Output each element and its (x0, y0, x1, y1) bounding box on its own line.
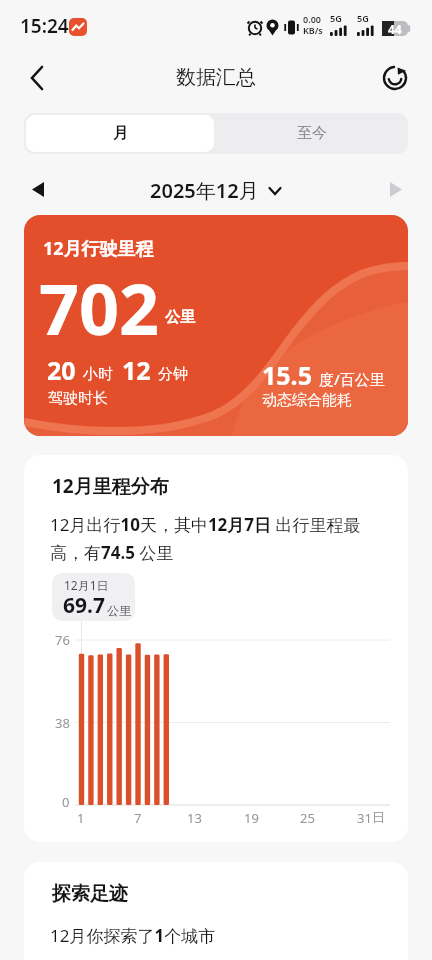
staticText: 5G (330, 12, 342, 24)
button[interactable] (378, 172, 412, 206)
staticText: 1 (77, 809, 85, 827)
staticText: 12月1日 (64, 577, 109, 593)
staticText: 度/百公里 (319, 369, 385, 389)
staticText: 小时 (83, 365, 113, 384)
staticText: 驾驶时长 (48, 389, 108, 408)
staticText: 月 (113, 124, 128, 143)
button[interactable] (374, 56, 416, 98)
staticText: 0.00 (303, 13, 321, 25)
staticText: 5G (357, 12, 369, 24)
staticText: 日 (372, 809, 385, 825)
staticText: 76 (55, 631, 70, 649)
staticText: 20 (47, 353, 76, 387)
staticText: 动态综合能耗 (262, 391, 352, 410)
button[interactable]: 至今 (216, 113, 408, 154)
staticText: 0 (62, 793, 70, 811)
staticText: 69.7 (63, 591, 105, 620)
staticText: 44 (388, 21, 402, 36)
button[interactable]: 2025年12月 (150, 177, 282, 204)
staticText: KB/s (303, 24, 323, 36)
staticText: 分钟 (158, 365, 188, 384)
staticText: 2025年12月 (150, 177, 259, 204)
staticText: 12月里程分布 (52, 473, 169, 499)
staticText: 15.5 (262, 358, 312, 392)
staticText: 数据汇总 (176, 65, 256, 90)
staticText: 702 (39, 260, 160, 355)
button[interactable] (22, 172, 56, 206)
staticText: 19 (244, 809, 259, 827)
staticText: 31 (357, 809, 372, 827)
staticText: 12月行驶里程 (43, 236, 154, 261)
staticText: 12 (122, 353, 151, 387)
button[interactable] (18, 58, 58, 98)
staticText: 12月你探索了1个城市 (50, 924, 216, 947)
staticText: 探索足迹 (52, 882, 128, 906)
staticText: 7 (134, 809, 142, 827)
staticText: 13 (187, 809, 202, 827)
staticText: 12月出行10天，其中12月7日 出行里程最 高，有74.5 公里 (50, 513, 361, 564)
staticText: 公里 (165, 308, 195, 327)
staticText: 25 (300, 809, 315, 827)
staticText: 至今 (297, 124, 327, 143)
staticText: 公里 (107, 603, 131, 618)
staticText: 15:24 (20, 13, 69, 39)
staticText: 38 (55, 714, 70, 732)
button[interactable]: 月 (26, 115, 214, 152)
